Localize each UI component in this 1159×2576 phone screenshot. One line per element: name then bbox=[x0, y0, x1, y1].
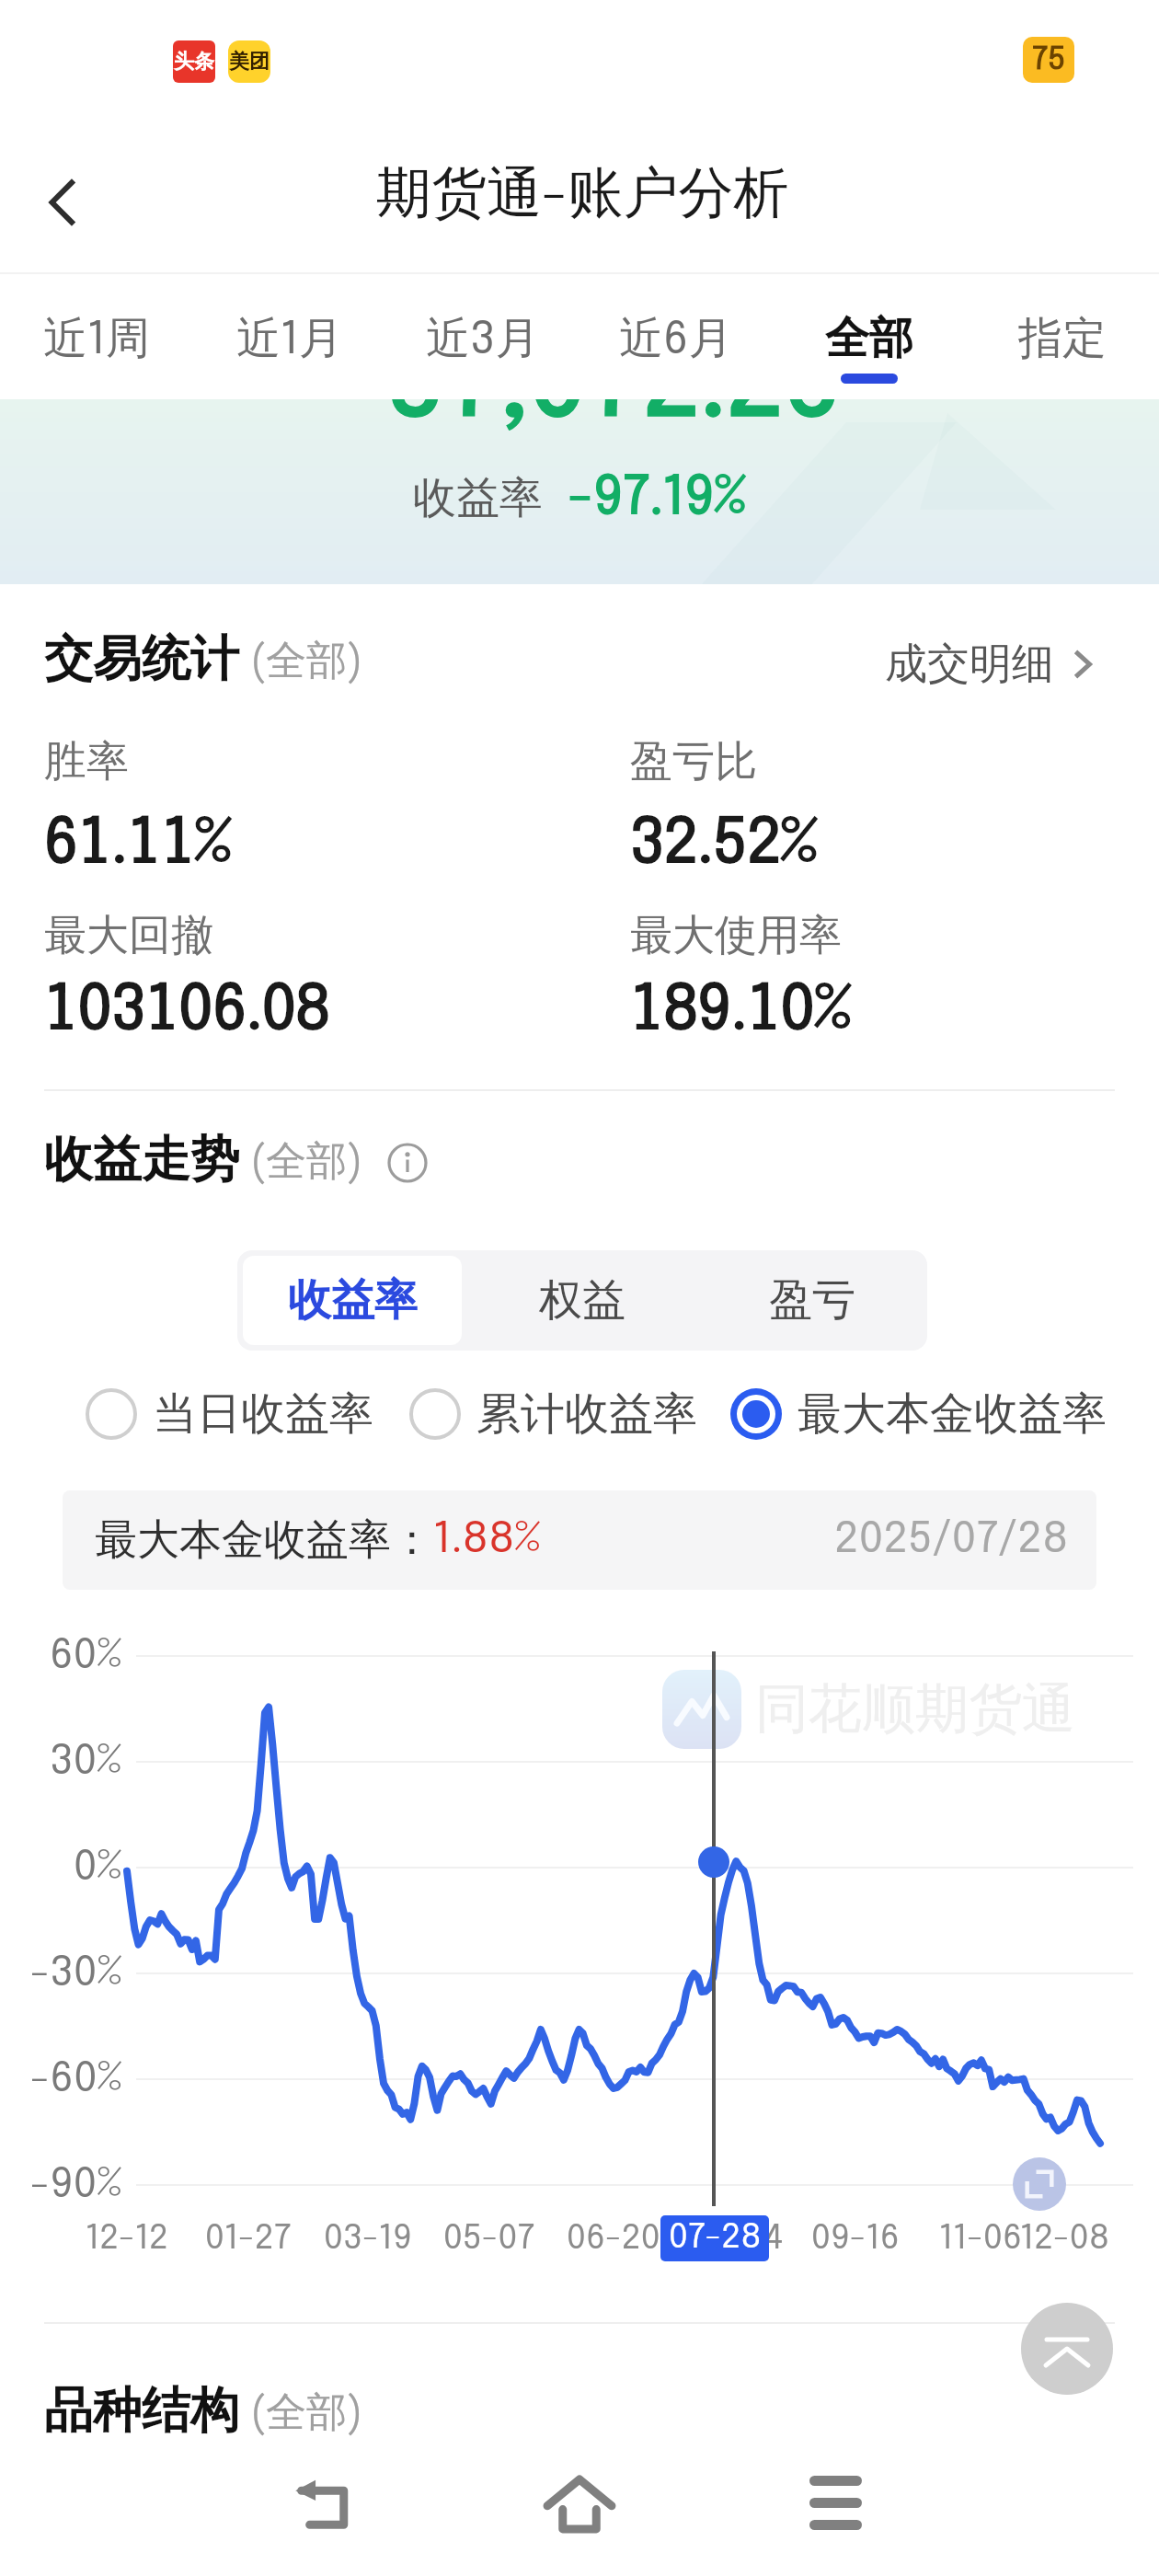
staticText: 最大使用率 bbox=[630, 909, 842, 962]
staticText: 1.88% bbox=[433, 1518, 541, 1562]
staticText: (全部) bbox=[250, 1136, 363, 1187]
staticText: 交易统计 bbox=[44, 628, 239, 690]
staticText: 01-27 bbox=[205, 2222, 292, 2257]
staticText: 收益率 bbox=[288, 1273, 418, 1328]
button[interactable]: 最大本金收益率 bbox=[729, 1386, 1107, 1442]
staticText: 美团 bbox=[229, 49, 270, 75]
staticText: 32.52% bbox=[630, 813, 818, 877]
staticText: (全部) bbox=[250, 636, 363, 686]
staticText: 75 bbox=[1032, 44, 1066, 76]
staticText: 2025/07/28 bbox=[834, 1518, 1069, 1562]
button[interactable]: 指定 bbox=[966, 276, 1159, 399]
staticText: -30% bbox=[30, 1952, 122, 1995]
button[interactable]: 成交明细 bbox=[885, 638, 1098, 691]
staticText: 06-20 bbox=[567, 2222, 660, 2257]
staticText: 189.10% bbox=[630, 980, 852, 1043]
button[interactable]: Home bbox=[532, 2455, 627, 2550]
staticText: 最大本金收益率 bbox=[798, 1386, 1107, 1442]
staticText: 08-04 bbox=[689, 2222, 784, 2257]
button[interactable]: 当日收益率 bbox=[85, 1386, 373, 1442]
staticText: 12-08 bbox=[1020, 2222, 1110, 2257]
staticText: 全部 bbox=[825, 311, 913, 366]
button[interactable]: Back bbox=[26, 164, 103, 241]
staticText: 近6月 bbox=[619, 311, 733, 366]
staticText: 11-06 bbox=[939, 2222, 1023, 2257]
staticText: 盈亏比 bbox=[630, 735, 757, 788]
button[interactable]: 近1周 bbox=[0, 276, 193, 399]
staticText: 期货通-账户分析 bbox=[376, 158, 789, 228]
staticText: 05-07 bbox=[443, 2222, 535, 2257]
staticText: 最大回撤 bbox=[44, 909, 213, 962]
staticText: 品种结构 bbox=[44, 2380, 239, 2442]
staticText: 头条 bbox=[174, 49, 214, 75]
staticText: 成交明细 bbox=[885, 638, 1054, 691]
staticText: 60% bbox=[50, 1635, 122, 1677]
staticText: 近1周 bbox=[43, 311, 150, 366]
button[interactable]: 近3月 bbox=[386, 276, 579, 399]
staticText: -97.19% bbox=[568, 472, 746, 525]
staticText: 07-28 bbox=[669, 2221, 762, 2256]
staticText: 权益 bbox=[539, 1273, 625, 1328]
button[interactable]: 全部 bbox=[773, 276, 966, 399]
button[interactable]: Recent apps bbox=[787, 2455, 883, 2550]
staticText: 收益率 bbox=[413, 471, 543, 525]
button[interactable]: 权益 bbox=[473, 1256, 692, 1345]
staticText: 30% bbox=[50, 1741, 122, 1783]
button[interactable]: 收益率 bbox=[243, 1256, 462, 1345]
staticText: (全部) bbox=[250, 2387, 363, 2438]
staticText: 近1月 bbox=[236, 311, 343, 366]
staticText: 同花顺期货通 bbox=[755, 1675, 1075, 1742]
staticText: 累计收益率 bbox=[476, 1386, 697, 1442]
staticText: 0% bbox=[74, 1846, 122, 1889]
staticText: 最大本金收益率： bbox=[95, 1513, 433, 1567]
button[interactable]: 近6月 bbox=[579, 276, 773, 399]
button[interactable]: 盈亏 bbox=[703, 1256, 922, 1345]
staticText: 61.11% bbox=[44, 813, 232, 877]
staticText: 胜率 bbox=[44, 735, 129, 788]
button[interactable]: Scroll to top bbox=[1021, 2303, 1113, 2395]
staticText: 盈亏 bbox=[769, 1273, 855, 1328]
button[interactable]: 近1月 bbox=[193, 276, 386, 399]
staticText: 当日收益率 bbox=[153, 1386, 373, 1442]
button[interactable]: Fullscreen bbox=[1013, 2157, 1066, 2211]
button[interactable]: 交易统计 bbox=[44, 628, 363, 690]
staticText: 57,072.26 bbox=[387, 399, 841, 440]
staticText: -60% bbox=[30, 2058, 122, 2100]
staticText: 03-19 bbox=[324, 2222, 412, 2257]
staticText: 收益走势 bbox=[44, 1129, 239, 1190]
staticText: 指定 bbox=[1018, 311, 1107, 366]
button[interactable]: Info bbox=[387, 1143, 428, 1183]
button[interactable]: Back bbox=[276, 2455, 372, 2550]
staticText: 103106.08 bbox=[44, 980, 330, 1043]
button[interactable]: 累计收益率 bbox=[408, 1386, 697, 1442]
staticText: -90% bbox=[30, 2164, 122, 2206]
staticText: 近3月 bbox=[426, 311, 540, 366]
staticText: 09-16 bbox=[811, 2222, 901, 2257]
staticText: 12-12 bbox=[86, 2222, 169, 2257]
